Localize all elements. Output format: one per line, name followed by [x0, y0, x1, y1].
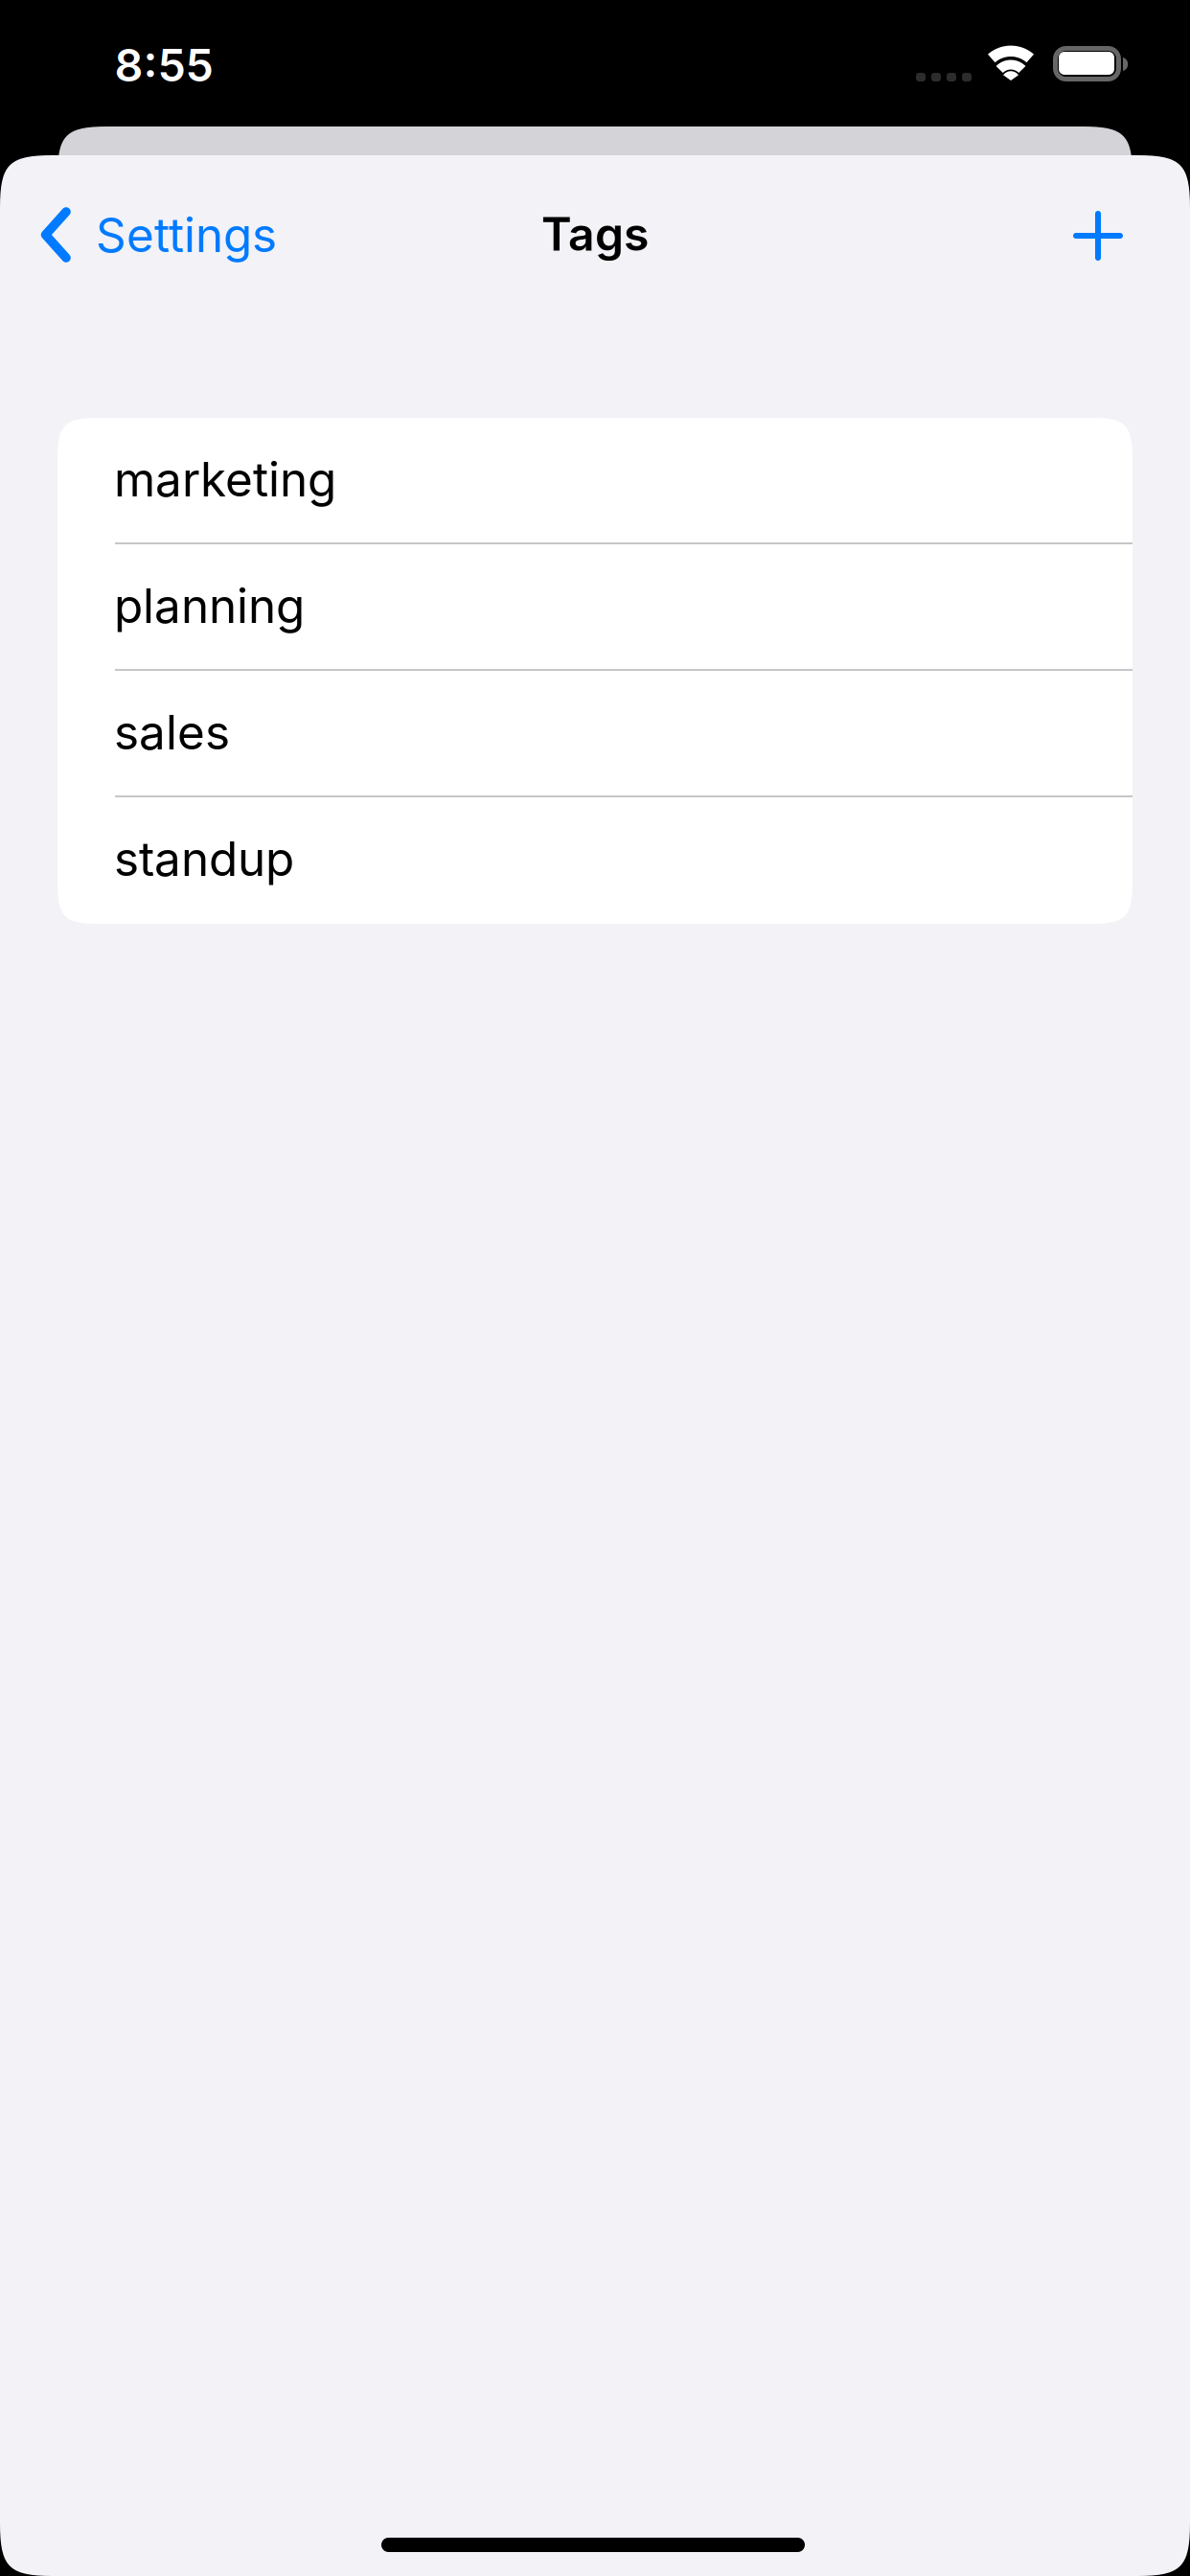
staticText: planning [114, 577, 305, 634]
staticText: standup [114, 830, 294, 887]
button[interactable]: Add Tag [1045, 188, 1151, 284]
staticText: 8:55 [114, 38, 213, 92]
button[interactable]: planning [115, 544, 1133, 671]
button[interactable]: sales [115, 671, 1133, 797]
button[interactable]: marketing [115, 418, 1133, 544]
staticText: sales [114, 704, 230, 761]
button[interactable]: Settings [31, 183, 286, 273]
button[interactable]: standup [115, 797, 1133, 924]
staticText: marketing [114, 451, 336, 508]
staticText: Tags [541, 206, 649, 262]
staticText: Settings [96, 206, 277, 263]
